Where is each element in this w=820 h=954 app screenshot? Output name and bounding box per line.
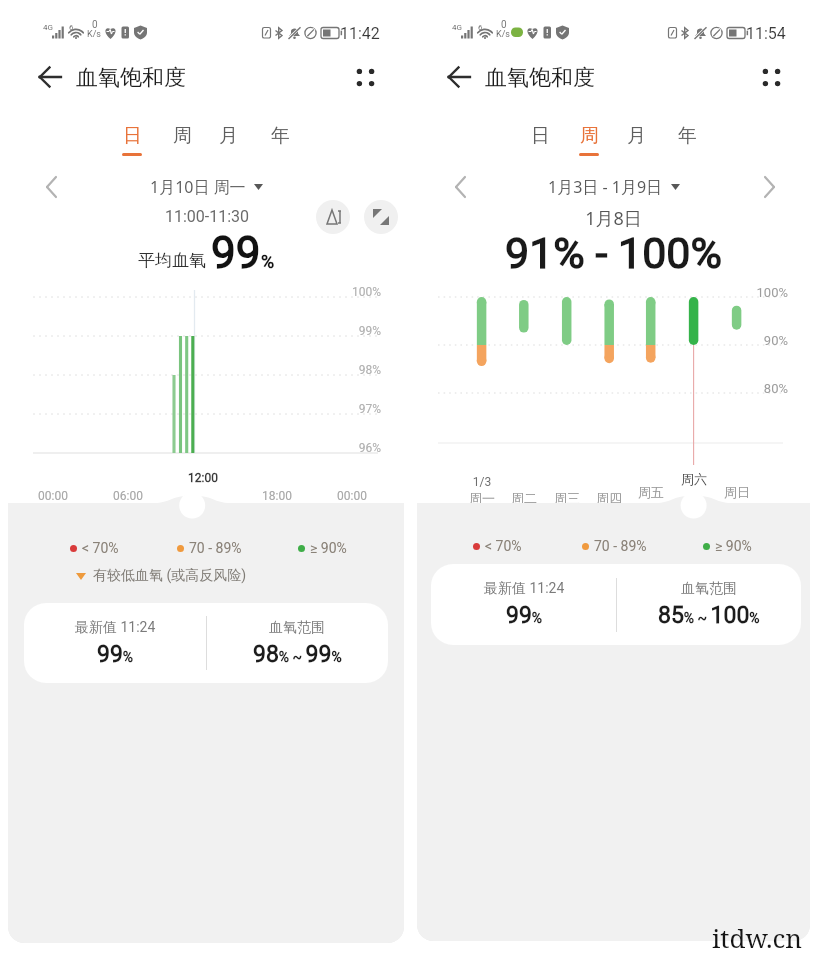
- staticText: ≥ 90%: [310, 540, 347, 556]
- staticText: 00:00: [322, 489, 382, 503]
- button[interactable]: 日: [518, 124, 562, 160]
- staticText: 周: [173, 124, 192, 148]
- staticText: 周六: [669, 471, 719, 487]
- staticText: 日: [531, 124, 550, 148]
- staticText: 0: [501, 19, 507, 31]
- button[interactable]: 有较低血氧 (或高反风险): [76, 567, 247, 585]
- staticText: 99%: [301, 324, 381, 338]
- button[interactable]: 年: [258, 124, 302, 160]
- button[interactable]: 最新值 11:24: [24, 603, 388, 683]
- button[interactable]: Analysis: [316, 200, 350, 234]
- staticText: 80%: [708, 381, 788, 396]
- staticText: 血氧范围: [681, 580, 737, 598]
- button[interactable]: < 70%: [473, 538, 522, 554]
- staticText: 血氧饱和度: [76, 64, 186, 92]
- staticText: 96%: [301, 441, 381, 455]
- staticText: 00:00: [23, 489, 83, 503]
- button[interactable]: 年: [665, 124, 709, 160]
- button[interactable]: 日: [110, 124, 154, 160]
- staticText: 6: [478, 23, 483, 32]
- staticText: 1月10日 周一: [150, 176, 246, 198]
- staticText: 周三: [542, 490, 592, 506]
- staticText: 70 - 89%: [189, 540, 242, 556]
- staticText: 6: [69, 23, 74, 32]
- button[interactable]: More options: [751, 57, 791, 97]
- staticText: 85% ~ 100%: [658, 602, 760, 629]
- staticText: 11:00-11:30: [9, 207, 404, 226]
- button[interactable]: Previous: [443, 172, 479, 202]
- staticText: 最新值 11:24: [484, 580, 565, 598]
- staticText: 06:00: [98, 489, 158, 503]
- button[interactable]: Expand: [364, 200, 398, 234]
- staticText: 97%: [301, 402, 381, 416]
- staticText: 90%: [708, 333, 788, 348]
- button[interactable]: ≥ 90%: [703, 538, 752, 554]
- staticText: ≥ 90%: [715, 538, 752, 554]
- staticText: 1月3日 - 1月9日: [548, 176, 663, 198]
- staticText: itdw.cn: [712, 920, 803, 954]
- staticText: 11:42: [340, 24, 380, 43]
- staticText: 周二: [499, 490, 549, 506]
- button[interactable]: More options: [345, 57, 385, 97]
- button[interactable]: < 70%: [70, 540, 119, 556]
- staticText: 周日: [712, 484, 762, 500]
- staticText: 100%: [708, 285, 788, 300]
- staticText: 0: [92, 19, 98, 31]
- staticText: 周四: [584, 490, 634, 506]
- button[interactable]: Previous: [34, 172, 70, 202]
- staticText: 日: [123, 124, 142, 148]
- button[interactable]: Back: [28, 55, 72, 99]
- button[interactable]: Back: [437, 55, 481, 99]
- staticText: 1月8日: [417, 206, 810, 231]
- staticText: %: [261, 251, 275, 272]
- staticText: K/s: [496, 29, 511, 40]
- staticText: 最新值 11:24: [75, 619, 156, 637]
- staticText: 70 - 89%: [594, 538, 647, 554]
- button[interactable]: 最新值 11:24: [431, 564, 801, 645]
- staticText: 平均血氧: [138, 250, 206, 271]
- button[interactable]: 70 - 89%: [177, 540, 242, 556]
- staticText: 周: [580, 124, 599, 148]
- staticText: 91% - 100%: [417, 228, 810, 278]
- staticText: 血氧范围: [269, 619, 325, 637]
- button[interactable]: ≥ 90%: [298, 540, 347, 556]
- staticText: 99: [211, 227, 261, 279]
- button[interactable]: 70 - 89%: [582, 538, 647, 554]
- staticText: 4G: [452, 23, 462, 32]
- staticText: 年: [271, 124, 290, 148]
- staticText: 11:54: [746, 24, 786, 43]
- staticText: 12:00: [178, 471, 228, 485]
- staticText: 血氧饱和度: [485, 64, 595, 92]
- staticText: 4G: [43, 23, 53, 32]
- button[interactable]: 1月10日 周一: [150, 176, 263, 198]
- button[interactable]: 周: [160, 124, 204, 160]
- button[interactable]: 周: [567, 124, 611, 160]
- button[interactable]: Next: [752, 172, 788, 202]
- staticText: 周一: [457, 490, 507, 506]
- staticText: 18:00: [247, 489, 307, 503]
- staticText: < 70%: [485, 538, 522, 554]
- staticText: 99%: [97, 641, 134, 668]
- staticText: 周五: [626, 484, 676, 500]
- staticText: 年: [678, 124, 697, 148]
- staticText: 月: [627, 124, 646, 148]
- button[interactable]: 月: [614, 124, 658, 160]
- staticText: 98%: [301, 363, 381, 377]
- button[interactable]: 月: [206, 124, 250, 160]
- staticText: 1/3: [457, 475, 507, 489]
- staticText: < 70%: [82, 540, 119, 556]
- staticText: 100%: [301, 285, 381, 299]
- staticText: 98% ~ 99%: [253, 641, 342, 668]
- staticText: 有较低血氧 (或高反风险): [93, 567, 247, 585]
- staticText: K/s: [87, 29, 102, 40]
- button[interactable]: 1月3日 - 1月9日: [548, 176, 680, 198]
- staticText: 99%: [506, 602, 543, 629]
- staticText: 月: [219, 124, 238, 148]
